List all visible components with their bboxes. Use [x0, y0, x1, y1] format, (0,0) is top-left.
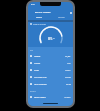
button[interactable]: More options [68, 10, 73, 15]
staticText: 7.5A [67, 62, 71, 64]
staticText: 12.4 kW [64, 96, 71, 98]
staticText: Trip [30, 49, 34, 51]
staticText: 7.6 kW [65, 69, 71, 71]
button[interactable]: STATUS [28, 14, 50, 19]
staticText: State of charge [33, 23, 46, 25]
staticText: 85 [48, 36, 53, 41]
button[interactable]: Current [30, 59, 71, 66]
staticText: Current [34, 62, 41, 64]
staticText: Power [34, 69, 39, 71]
staticText: Battery [30, 90, 36, 92]
button[interactable]: Mileage [30, 52, 71, 59]
staticText: STATUS [36, 16, 42, 18]
staticText: Time remaining [34, 83, 47, 85]
button[interactable]: BMW i3 Charger [28, 8, 73, 16]
staticText: Mileage [34, 55, 41, 57]
staticText: % [53, 37, 55, 40]
button[interactable]: Time remaining [30, 80, 71, 87]
staticText: HISTORY [58, 16, 66, 18]
staticText: 20,466 [65, 55, 71, 57]
button[interactable]: Power [30, 66, 71, 73]
button[interactable]: Consumed kWh [30, 73, 71, 80]
button[interactable]: Electric battery [30, 93, 71, 100]
staticText: Electric battery [34, 96, 46, 98]
staticText: BMW i3 Charger [35, 11, 51, 14]
staticText: 0h 5m [66, 83, 71, 85]
staticText: Consumed kWh [34, 76, 47, 78]
button[interactable]: HISTORY [50, 14, 73, 19]
staticText: 23 kWh [65, 76, 71, 78]
staticText: 9:41 [31, 3, 35, 6]
